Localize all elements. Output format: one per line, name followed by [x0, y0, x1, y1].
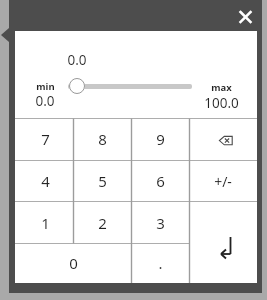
button[interactable]: 3	[131, 202, 189, 243]
staticText: 1	[41, 213, 50, 233]
staticText: 4	[41, 171, 50, 191]
staticText: 0.0	[35, 92, 55, 110]
button[interactable]	[233, 3, 259, 29]
button[interactable]: 7	[16, 118, 74, 160]
staticText: max	[211, 81, 232, 94]
staticText: 2	[98, 213, 107, 233]
staticText: min	[36, 80, 55, 93]
button[interactable]: 6	[131, 160, 189, 202]
button[interactable]: 8	[74, 118, 131, 160]
button[interactable]: 9	[131, 118, 189, 160]
button[interactable]	[189, 118, 257, 160]
button[interactable]: 4	[16, 160, 74, 202]
staticText: 0	[69, 253, 78, 273]
staticText: 8	[98, 129, 107, 149]
button[interactable]: 5	[74, 160, 131, 202]
staticText: 5	[98, 171, 107, 191]
staticText: 0.0	[67, 51, 87, 69]
button[interactable]	[69, 78, 85, 94]
staticText: .	[158, 253, 163, 273]
button[interactable]: 2	[74, 202, 131, 243]
staticText: 3	[156, 213, 165, 233]
button[interactable]: .	[131, 243, 189, 283]
staticText: 6	[156, 171, 165, 191]
button[interactable]: 0	[16, 243, 131, 283]
button[interactable]	[189, 202, 257, 283]
staticText: 100.0	[204, 94, 239, 112]
staticText: +/-	[214, 172, 232, 191]
button[interactable]: 1	[16, 202, 74, 243]
staticText: 9	[156, 129, 165, 149]
staticText: 7	[41, 129, 50, 149]
button[interactable]: +/-	[189, 160, 257, 202]
